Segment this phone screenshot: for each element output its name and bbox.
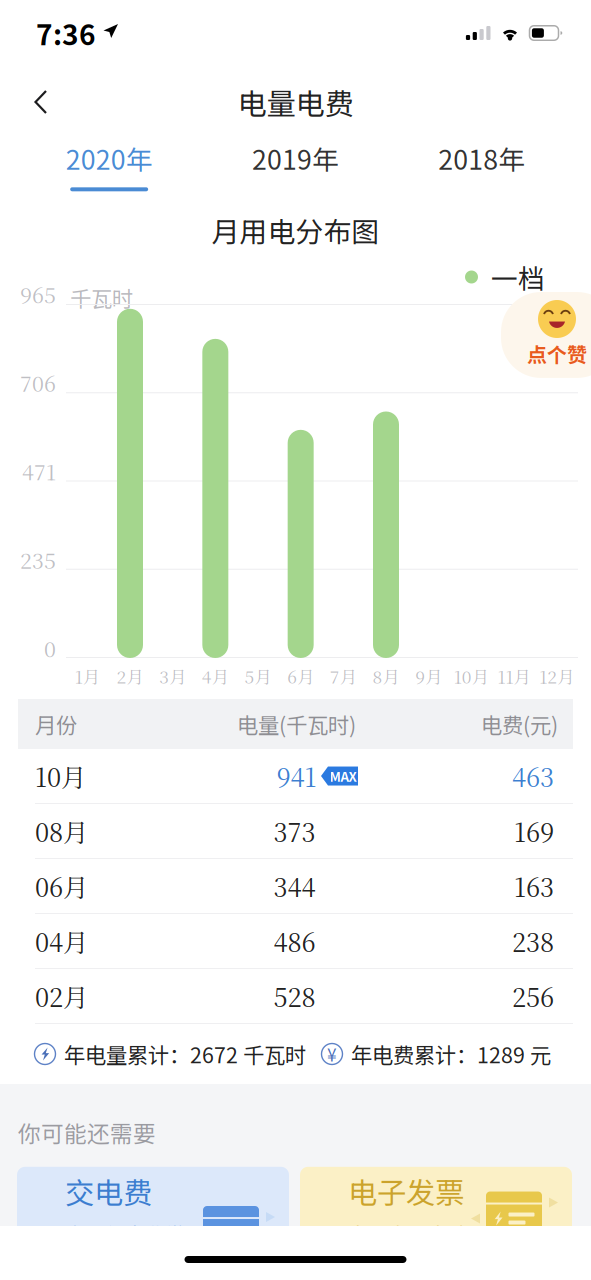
staticText: 238	[512, 923, 554, 959]
staticText: 486	[273, 923, 315, 959]
staticText: 点个赞	[527, 339, 587, 368]
staticText: 169	[514, 813, 554, 849]
staticText: 04月	[35, 923, 88, 959]
staticText: 8月	[372, 663, 399, 688]
staticText: 2月	[116, 663, 143, 688]
button[interactable]: 交电费	[17, 1167, 289, 1277]
staticText: 7:36	[36, 13, 96, 53]
staticText: 千瓦时	[70, 282, 133, 313]
button[interactable]: 04月	[18, 914, 573, 969]
staticText: 你可能还需要	[18, 1116, 156, 1149]
staticText: 373	[273, 813, 315, 849]
staticText: 3月	[159, 663, 186, 688]
staticText: 528	[273, 978, 315, 1014]
staticText: 电子发票	[348, 1170, 464, 1212]
staticText: 4月	[202, 663, 229, 688]
button[interactable]: 2020年	[16, 135, 202, 197]
staticText: 344	[273, 868, 315, 904]
button[interactable]: 电子发票	[300, 1167, 572, 1277]
staticText: 2020年	[66, 139, 153, 177]
staticText: 256	[512, 978, 554, 1014]
button[interactable]: 06月	[18, 859, 573, 914]
staticText: 6月	[287, 663, 314, 688]
button[interactable]: 2018年	[389, 135, 575, 197]
button[interactable]: 10月	[18, 749, 573, 804]
staticText: MAX	[329, 766, 356, 786]
staticText: 12月	[539, 663, 574, 688]
staticText: 706	[20, 367, 56, 398]
staticText: 9月	[415, 663, 442, 688]
staticText: 08月	[35, 813, 88, 849]
staticText: 11月	[497, 663, 530, 688]
staticText: 电量电费	[237, 81, 353, 123]
staticText: 月用电分布图	[211, 210, 379, 250]
staticText: 7月	[330, 663, 357, 688]
staticText: 10月	[454, 663, 489, 688]
staticText: 一档	[491, 258, 545, 296]
staticText: 163	[514, 868, 554, 904]
button[interactable]: 02月	[18, 969, 573, 1024]
staticText: 去进行电费缴纳	[65, 1219, 185, 1277]
staticText: 2018年	[438, 139, 525, 177]
button[interactable]: 2019年	[202, 135, 389, 197]
button[interactable]: 08月	[18, 804, 573, 859]
staticText: 交电费	[65, 1170, 152, 1212]
button[interactable]: 点个赞	[501, 292, 591, 378]
staticText: 0	[44, 633, 56, 663]
staticText: 471	[22, 456, 56, 486]
staticText: 965	[20, 279, 56, 309]
staticText: 年电费累计：1289 元	[351, 1039, 551, 1069]
staticText: 10月	[35, 758, 86, 794]
staticText: 5月	[244, 663, 271, 688]
staticText: 月份	[35, 709, 77, 739]
staticText: 2019年	[252, 139, 339, 177]
button[interactable]: 返回	[15, 76, 67, 128]
staticText: 941	[276, 758, 316, 794]
staticText: 06月	[35, 868, 88, 904]
staticText: 02月	[35, 978, 88, 1014]
staticText: 235	[20, 544, 56, 575]
staticText: 电子发票申请	[348, 1219, 468, 1248]
staticText: 电费(元)	[481, 709, 558, 739]
staticText: 1月	[75, 663, 100, 688]
staticText: 463	[512, 758, 554, 794]
staticText: 年电量累计：2672 千瓦时	[64, 1039, 306, 1069]
staticText: 电量(千瓦时)	[237, 709, 356, 739]
staticText: ¥	[327, 1041, 337, 1067]
